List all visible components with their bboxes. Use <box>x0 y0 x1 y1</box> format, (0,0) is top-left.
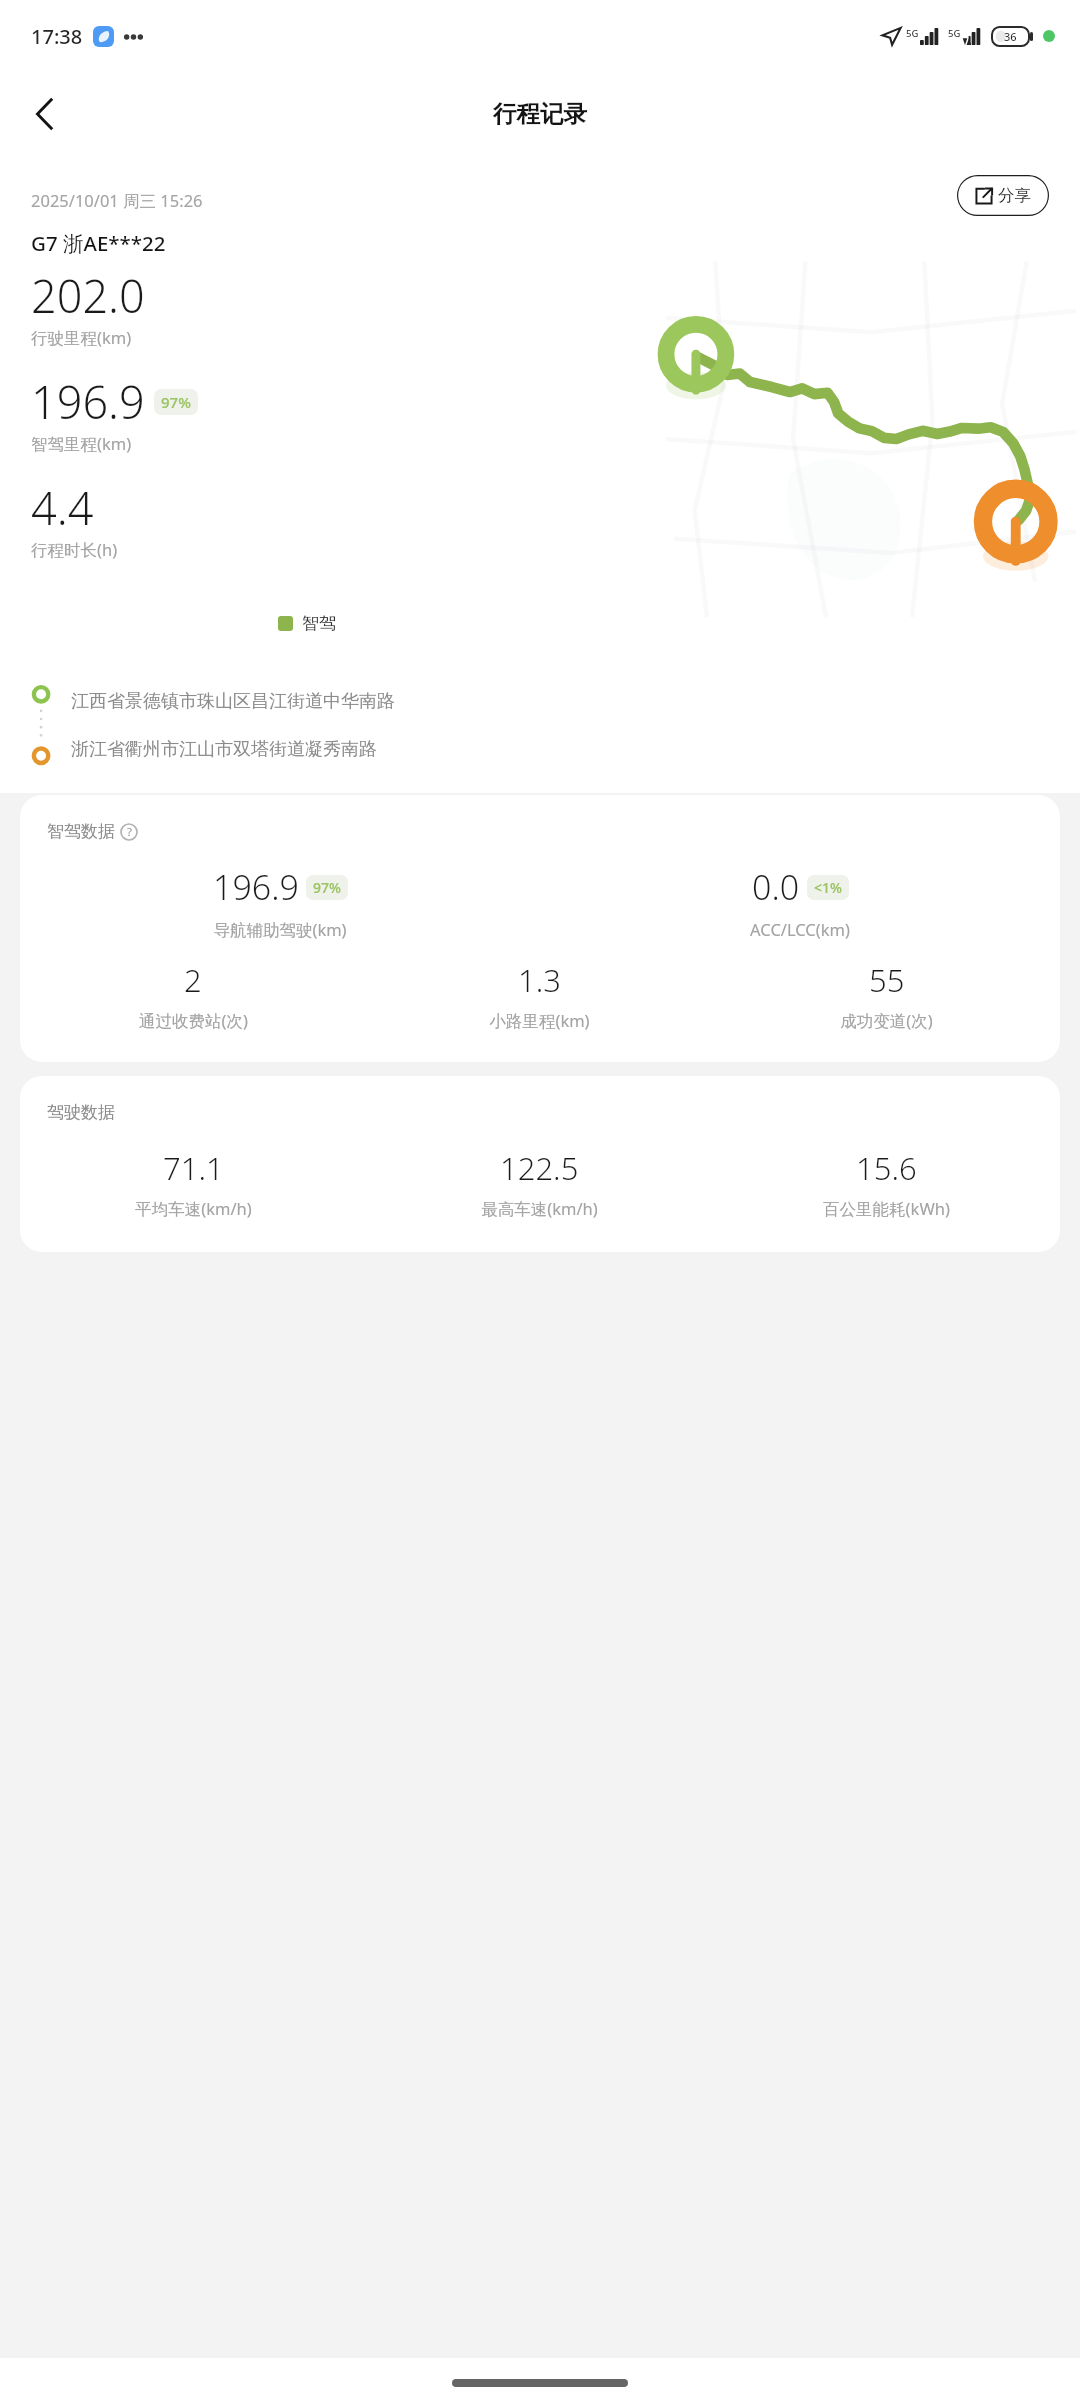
staticText: ACC/LCC(km) <box>750 918 850 940</box>
staticText: 55 <box>869 959 905 1001</box>
staticText: 202.0 <box>31 265 145 326</box>
staticText: 2 <box>184 959 202 1001</box>
staticText: 小路里程(km) <box>489 1009 590 1032</box>
button[interactable]: Back <box>17 86 73 142</box>
staticText: 196.9 <box>31 371 145 432</box>
staticText: 最高车速(km/h) <box>481 1197 598 1220</box>
staticText: 智驾 <box>302 613 336 634</box>
staticText: 97% <box>313 878 341 897</box>
staticText: <1% <box>814 878 842 897</box>
staticText: 江西省景德镇市珠山区昌江街道中华南路 <box>71 690 395 713</box>
staticText: 17:38 <box>31 23 83 50</box>
staticText: ? <box>127 824 132 840</box>
staticText: 智驾里程(km) <box>31 432 132 455</box>
staticText: 4.4 <box>31 477 94 538</box>
staticText: 分享 <box>998 185 1031 206</box>
staticText: 1.3 <box>518 959 561 1001</box>
button[interactable]: Help <box>120 823 138 841</box>
staticText: 5G <box>948 27 961 40</box>
staticText: 智驾数据 <box>47 821 115 842</box>
staticText: 0.0 <box>752 864 800 910</box>
staticText: 行驶里程(km) <box>31 326 132 349</box>
button[interactable]: 分享 <box>957 175 1049 216</box>
staticText: 71.1 <box>163 1147 224 1189</box>
staticText: G7 浙AE***22 <box>31 229 166 257</box>
staticText: 浙江省衢州市江山市双塔街道凝秀南路 <box>71 738 377 761</box>
staticText: 2025/10/01 周三 15:26 <box>31 189 203 212</box>
staticText: 196.9 <box>213 864 299 910</box>
staticText: 36 <box>1004 29 1017 44</box>
staticText: 平均车速(km/h) <box>135 1197 252 1220</box>
staticText: 15.6 <box>856 1147 917 1189</box>
staticText: 5G <box>906 27 919 40</box>
staticText: 导航辅助驾驶(km) <box>213 918 347 941</box>
staticText: 97% <box>161 392 191 412</box>
staticText: 122.5 <box>500 1147 579 1189</box>
staticText: 驾驶数据 <box>47 1102 115 1123</box>
staticText: 通过收费站(次) <box>139 1009 248 1032</box>
staticText: 行程记录 <box>493 99 587 129</box>
staticText: 行程时长(h) <box>31 538 118 561</box>
staticText: 成功变道(次) <box>840 1009 933 1032</box>
staticText: 百公里能耗(kWh) <box>823 1197 950 1220</box>
